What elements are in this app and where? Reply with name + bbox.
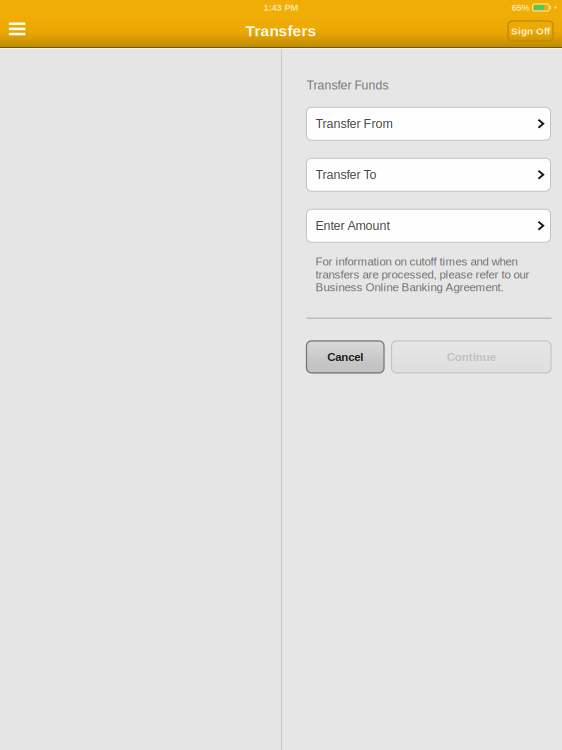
staticText: Transfer From bbox=[315, 117, 392, 131]
staticText: Transfer To bbox=[315, 168, 376, 182]
button[interactable]: Cancel bbox=[306, 341, 384, 373]
button[interactable]: Transfer From bbox=[306, 107, 550, 140]
staticText: For information on cutoff times and when… bbox=[315, 255, 529, 294]
staticText: 1:43 PM bbox=[263, 2, 298, 13]
staticText: 65% bbox=[512, 2, 530, 13]
staticText: Sign Off bbox=[511, 25, 550, 36]
staticText: Enter Amount bbox=[315, 219, 389, 233]
button[interactable]: Continue bbox=[391, 341, 551, 373]
button[interactable]: Enter Amount bbox=[306, 209, 550, 242]
staticText: Transfers bbox=[245, 22, 316, 40]
button[interactable]: Sign Off bbox=[508, 21, 553, 41]
staticText: Continue bbox=[447, 350, 496, 363]
button[interactable]: Menu bbox=[0, 15, 35, 47]
button[interactable]: Transfer To bbox=[306, 158, 550, 191]
staticText: Cancel bbox=[327, 350, 363, 363]
staticText: Transfer Funds bbox=[306, 78, 388, 92]
